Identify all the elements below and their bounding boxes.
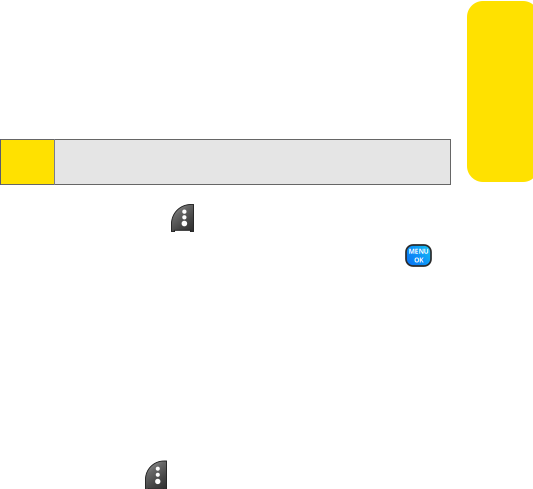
button[interactable]: More options <box>145 461 166 489</box>
staticText: MENU <box>408 247 428 255</box>
staticText: OK <box>414 255 423 264</box>
button[interactable]: More options <box>171 204 193 231</box>
button[interactable]: MENU <box>406 245 431 266</box>
